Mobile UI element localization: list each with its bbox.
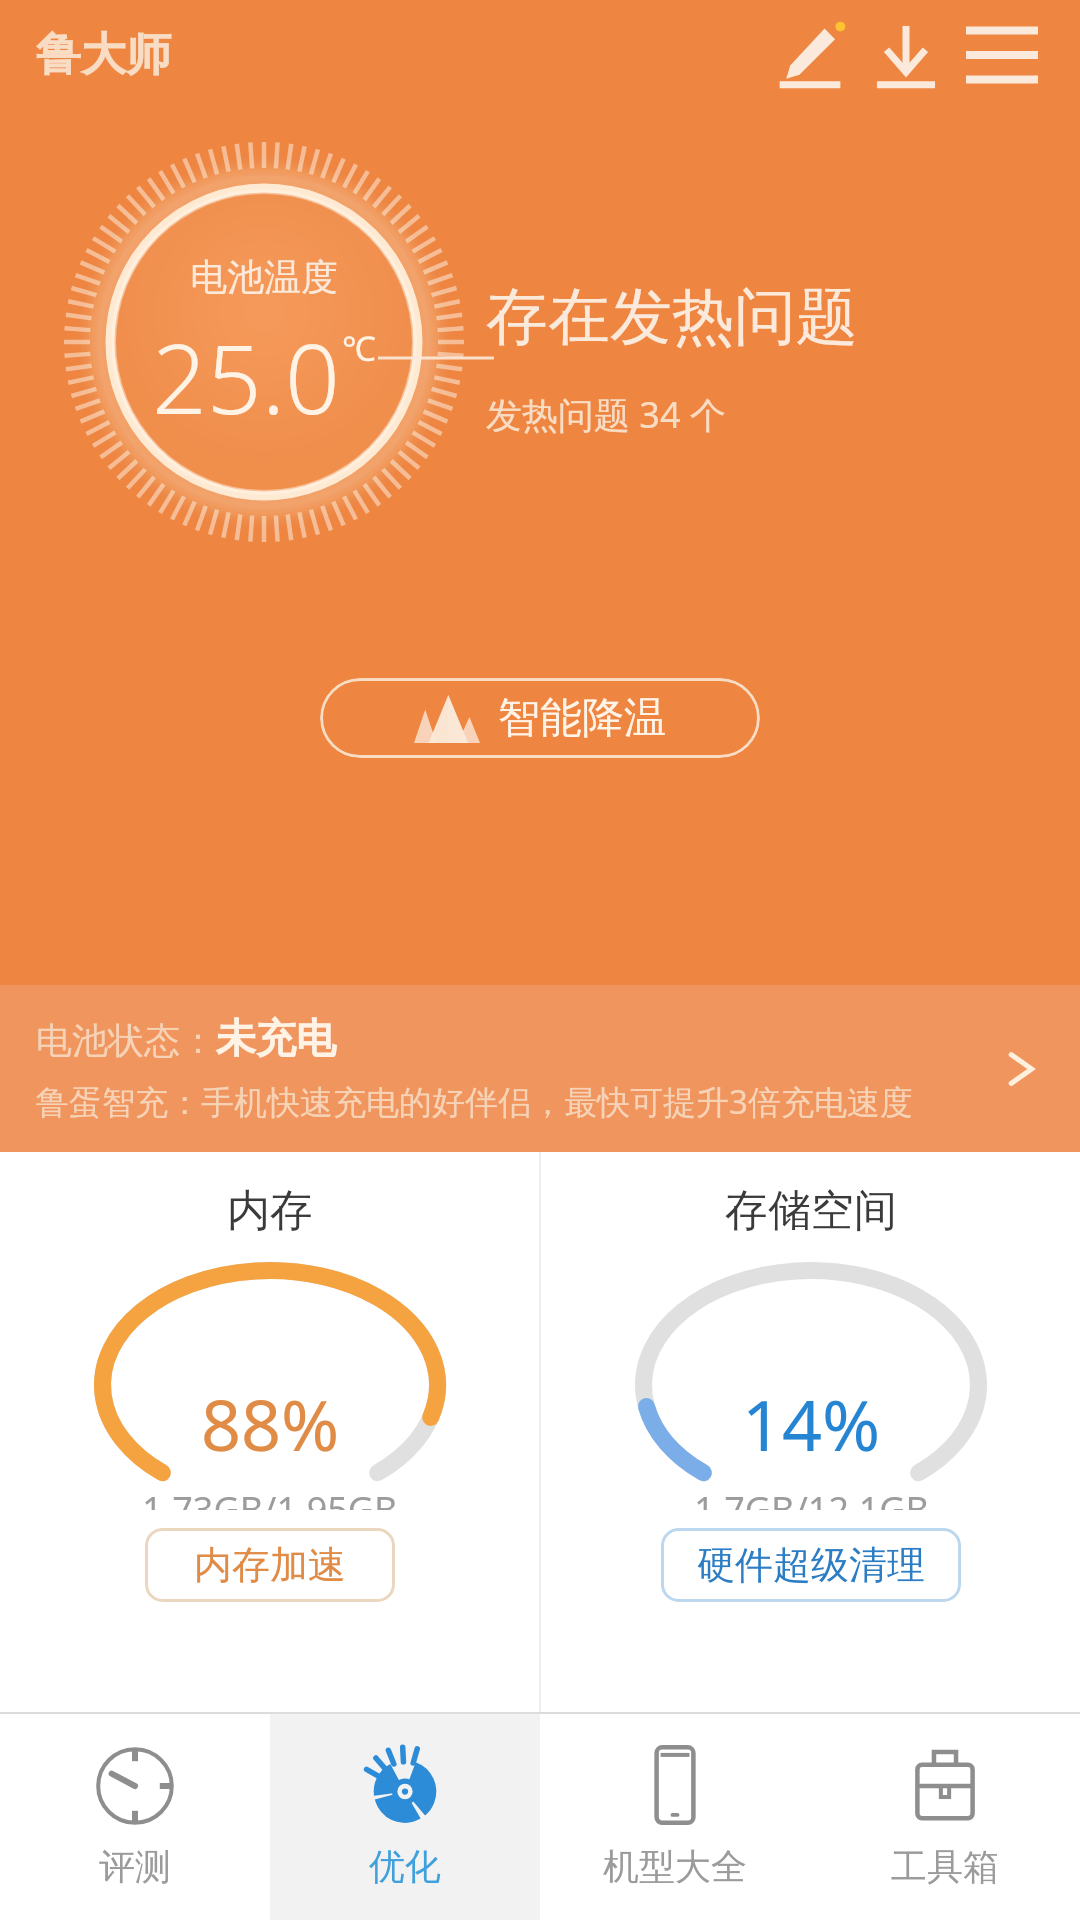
staticText: 智能降温 bbox=[498, 692, 666, 745]
staticText: 88% bbox=[201, 1376, 340, 1471]
staticText: 1.7GB/12.1GB bbox=[694, 1485, 929, 1510]
staticText: 鲁蛋智充：手机快速充电的好伴侣，最快可提升3倍充电速度 bbox=[36, 1079, 913, 1124]
staticText: 机型大全 bbox=[603, 1844, 747, 1889]
button[interactable]: 智能降温 bbox=[320, 678, 760, 758]
staticText: 未充电 bbox=[216, 1013, 336, 1063]
button[interactable]: 机型大全 bbox=[540, 1714, 810, 1920]
staticText: 发热问题 34 个 bbox=[486, 390, 726, 439]
staticText: 电池状态： bbox=[36, 1018, 216, 1063]
staticText: 1.73GB/1.95GB bbox=[142, 1485, 398, 1510]
staticText: 鲁大师 bbox=[36, 27, 171, 84]
staticText: 优化 bbox=[369, 1844, 441, 1889]
button[interactable]: 硬件超级清理 bbox=[661, 1528, 961, 1602]
staticText: 内存 bbox=[227, 1184, 313, 1238]
staticText: 电池温度 bbox=[190, 254, 338, 301]
staticText: 存在发热问题 bbox=[486, 278, 858, 356]
button[interactable]: Downloads bbox=[858, 7, 954, 103]
staticText: 硬件超级清理 bbox=[697, 1541, 925, 1589]
button[interactable]: 评测 bbox=[0, 1714, 270, 1920]
button[interactable]: 工具箱 bbox=[810, 1714, 1080, 1920]
staticText: 内存加速 bbox=[194, 1541, 346, 1589]
staticText: ℃ bbox=[342, 325, 376, 371]
staticText: 25.0 bbox=[152, 311, 340, 442]
staticText: 工具箱 bbox=[891, 1844, 999, 1889]
staticText: 14% bbox=[742, 1376, 881, 1471]
staticText: 评测 bbox=[99, 1844, 171, 1889]
button[interactable]: Feedback bbox=[762, 7, 858, 103]
button[interactable]: Menu bbox=[954, 7, 1050, 103]
button[interactable]: 优化 bbox=[270, 1714, 540, 1920]
button[interactable]: 内存加速 bbox=[145, 1528, 395, 1602]
button[interactable]: 电池状态： bbox=[0, 985, 1080, 1152]
staticText: 存储空间 bbox=[725, 1184, 897, 1238]
other: More bbox=[992, 1039, 1052, 1099]
